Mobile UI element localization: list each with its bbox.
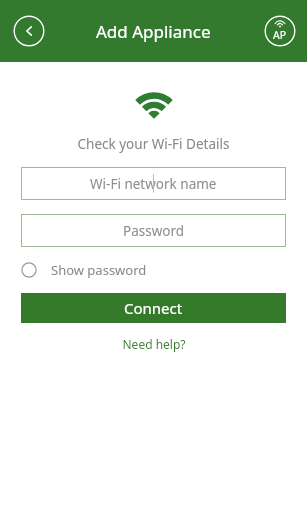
staticText: Check your Wi-Fi Details: [0, 135, 307, 153]
button[interactable]: Access Point mode: [264, 15, 296, 47]
staticText: Connect: [124, 298, 183, 318]
staticText: Add Appliance: [96, 20, 211, 43]
staticText: AP: [273, 28, 287, 42]
button[interactable]: Password: [21, 214, 286, 247]
button[interactable]: Need help?: [0, 336, 307, 352]
button[interactable]: Show password: [21, 257, 286, 283]
staticText: Password: [123, 222, 185, 240]
button[interactable]: Wi-Fi network name: [21, 167, 286, 200]
staticText: Wi-Fi network name: [90, 175, 217, 193]
staticText: Need help?: [122, 336, 186, 352]
button[interactable]: Connect: [21, 293, 286, 323]
button[interactable]: Back: [13, 15, 45, 47]
staticText: Show password: [51, 261, 147, 279]
